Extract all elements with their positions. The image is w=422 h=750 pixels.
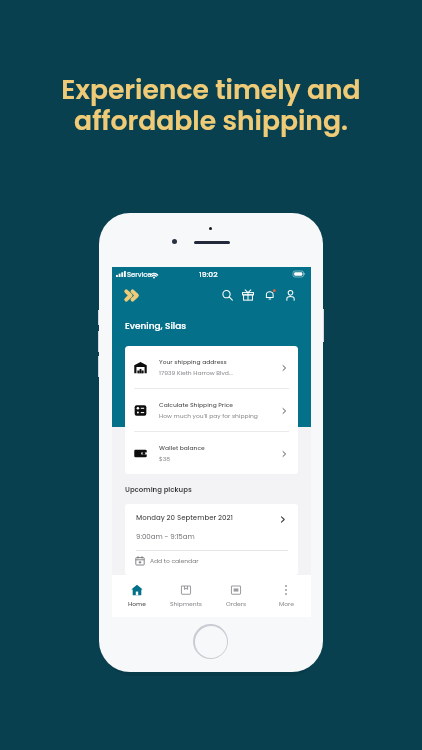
button[interactable]: Wallet balance xyxy=(125,432,298,474)
staticText: Monday 20 September 2021 xyxy=(136,513,233,523)
staticText: Calculate Shipping Price xyxy=(159,401,234,409)
staticText: Experience timely and affordable shippin… xyxy=(61,71,361,139)
staticText: 17939 Kieth Harrow Blvd... xyxy=(159,369,233,377)
button[interactable]: Orders xyxy=(211,575,261,617)
button[interactable]: Home xyxy=(112,575,161,617)
staticText: Service xyxy=(127,270,152,280)
staticText: Your shipping address xyxy=(159,358,227,366)
staticText: Evening, Silas xyxy=(125,320,187,333)
staticText: Home xyxy=(128,600,146,608)
button[interactable]: Monday 20 September 2021 xyxy=(125,504,298,575)
staticText: Orders xyxy=(226,600,247,608)
staticText: 9:00am - 9:15am xyxy=(136,532,195,542)
button[interactable]: Profile xyxy=(282,287,298,303)
staticText: Add to calendar xyxy=(150,557,199,565)
staticText: Wallet balance xyxy=(159,444,205,452)
button[interactable]: More xyxy=(261,575,311,617)
button[interactable]: Search xyxy=(219,287,235,303)
staticText: How much you'll pay for shipping xyxy=(159,412,258,420)
button[interactable]: Logo xyxy=(124,288,139,303)
button[interactable]: Calculate Shipping Price xyxy=(125,389,298,431)
staticText: More xyxy=(279,600,294,608)
staticText: $38 xyxy=(159,455,171,463)
button[interactable]: Your shipping address xyxy=(125,346,298,388)
staticText: 19:02 xyxy=(199,269,218,280)
staticText: Shipments xyxy=(170,600,202,608)
staticText: Upcoming pickups xyxy=(125,485,192,495)
button[interactable]: Notifications xyxy=(262,287,278,303)
button[interactable]: Rewards xyxy=(240,287,256,303)
button[interactable]: Shipments xyxy=(161,575,211,617)
